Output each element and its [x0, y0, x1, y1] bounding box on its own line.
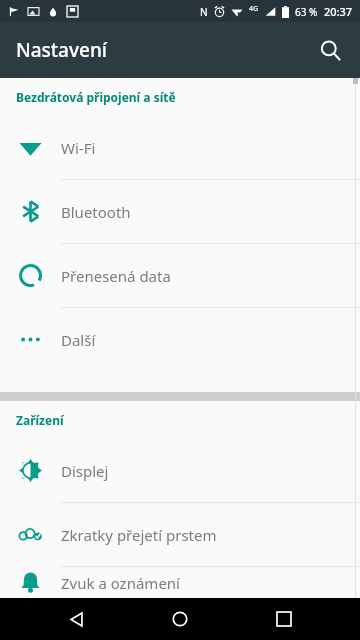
staticText: Bluetooth	[61, 202, 131, 222]
staticText: 20:37	[324, 4, 353, 19]
button[interactable]: Recent apps	[256, 598, 312, 640]
staticText: 63 %	[295, 5, 318, 19]
staticText: Další	[61, 330, 96, 350]
button[interactable]: Wi-Fi	[0, 116, 360, 179]
staticText: Displej	[61, 461, 109, 481]
button[interactable]: Search	[308, 28, 352, 72]
staticText: Zkratky přejetí prstem	[61, 525, 217, 545]
button[interactable]: Zkratky přejetí prstem	[0, 503, 360, 566]
staticText: Wi-Fi	[61, 138, 96, 158]
staticText: Bezdrátová připojení a sítě	[16, 89, 176, 105]
staticText: N	[200, 5, 208, 19]
button[interactable]: Home	[152, 598, 208, 640]
button[interactable]: Zvuk a oznámení	[0, 567, 360, 598]
staticText: Přenesená data	[61, 266, 171, 286]
staticText: 4G	[249, 4, 259, 14]
button[interactable]: Přenesená data	[0, 244, 360, 307]
staticText: Zvuk a oznámení	[61, 573, 180, 593]
button[interactable]: Bluetooth	[0, 180, 360, 243]
staticText: Zařízení	[16, 412, 64, 428]
button[interactable]: Back	[48, 598, 104, 640]
staticText: Nastavení	[16, 37, 107, 63]
button[interactable]: Displej	[0, 439, 360, 502]
button[interactable]: Další	[0, 308, 360, 371]
